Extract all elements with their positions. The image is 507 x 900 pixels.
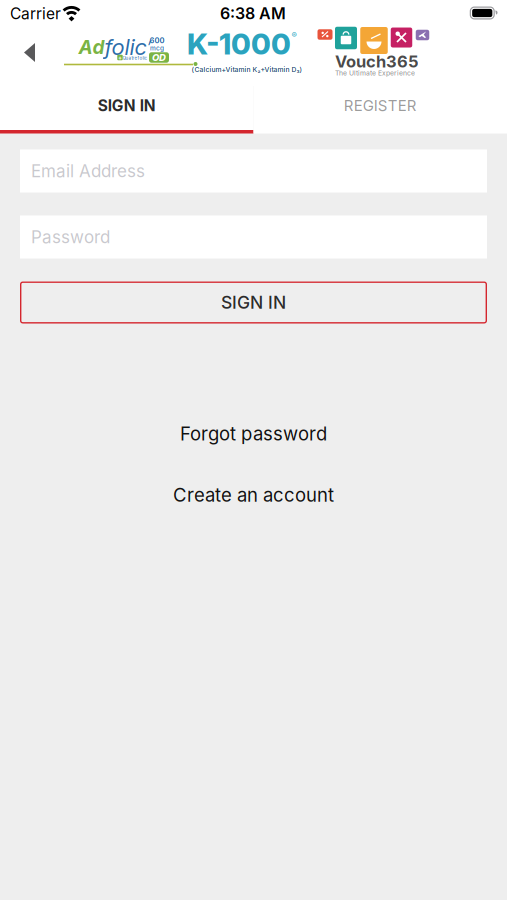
staticText: mcg	[150, 44, 164, 52]
button[interactable]: SIGN IN	[20, 281, 487, 323]
staticText: ®	[291, 30, 296, 40]
staticText: SIGN IN	[98, 96, 156, 115]
staticText: SIGN IN	[221, 292, 286, 313]
staticText: Create an account	[173, 484, 334, 506]
staticText: +	[118, 54, 122, 61]
staticText: Forgot password	[180, 422, 327, 445]
staticText: REGISTER	[344, 96, 417, 114]
staticText: (Calcium+Vitamin K₂+Vitamin D₃)	[191, 65, 302, 74]
button[interactable]: SIGN IN	[0, 86, 253, 130]
staticText: The Ultimate Experience	[335, 69, 415, 77]
staticText: Email Address	[31, 161, 145, 181]
staticText: Vouch365	[335, 51, 419, 71]
staticText: OD	[152, 52, 166, 63]
staticText: Quatrefolic	[122, 55, 147, 61]
staticText: K-1000	[187, 26, 291, 62]
staticText: Carrier	[10, 4, 61, 23]
staticText: Password	[31, 227, 110, 247]
staticText: ’	[146, 37, 151, 57]
button[interactable]: Forgot password	[180, 422, 327, 445]
staticText: 600	[149, 36, 164, 45]
staticText: 6:38 AM	[220, 4, 286, 23]
staticText: Ad	[78, 35, 104, 58]
staticText: folic	[104, 34, 146, 60]
button[interactable]: Create an account	[173, 484, 334, 506]
button[interactable]: REGISTER	[253, 86, 507, 130]
button[interactable]: Back	[16, 35, 43, 70]
